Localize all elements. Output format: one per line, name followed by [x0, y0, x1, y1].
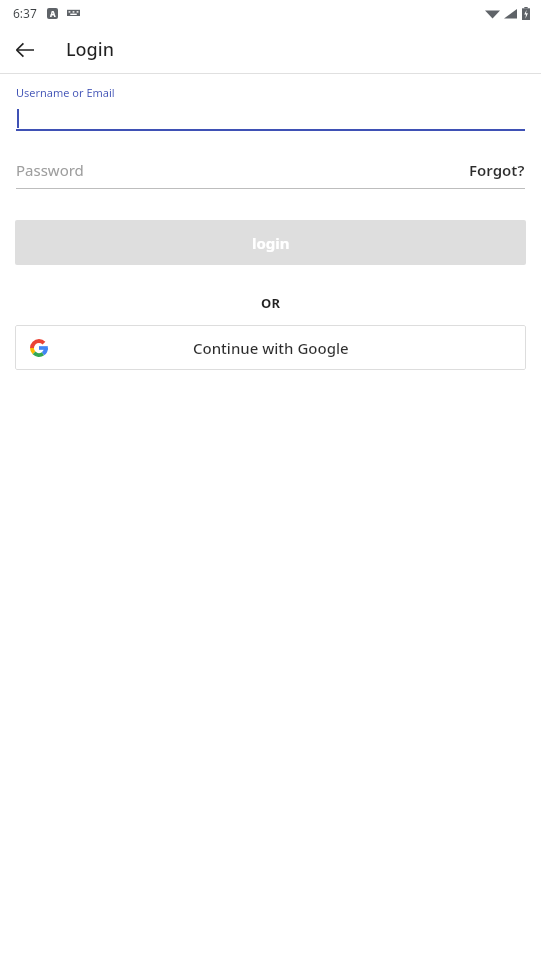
button[interactable]: Password: [16, 160, 84, 180]
button[interactable]: Username or Email: [16, 85, 525, 131]
button[interactable]: Back: [7, 32, 43, 68]
staticText: Login: [66, 37, 114, 62]
button[interactable]: Forgot?: [469, 160, 525, 180]
staticText: Username or Email: [16, 85, 115, 100]
staticText: A: [50, 8, 56, 19]
staticText: login: [252, 233, 290, 253]
staticText: Continue with Google: [193, 338, 349, 358]
staticText: OR: [0, 294, 541, 312]
staticText: 6:37: [13, 5, 37, 21]
button[interactable]: Continue with Google: [15, 325, 526, 370]
